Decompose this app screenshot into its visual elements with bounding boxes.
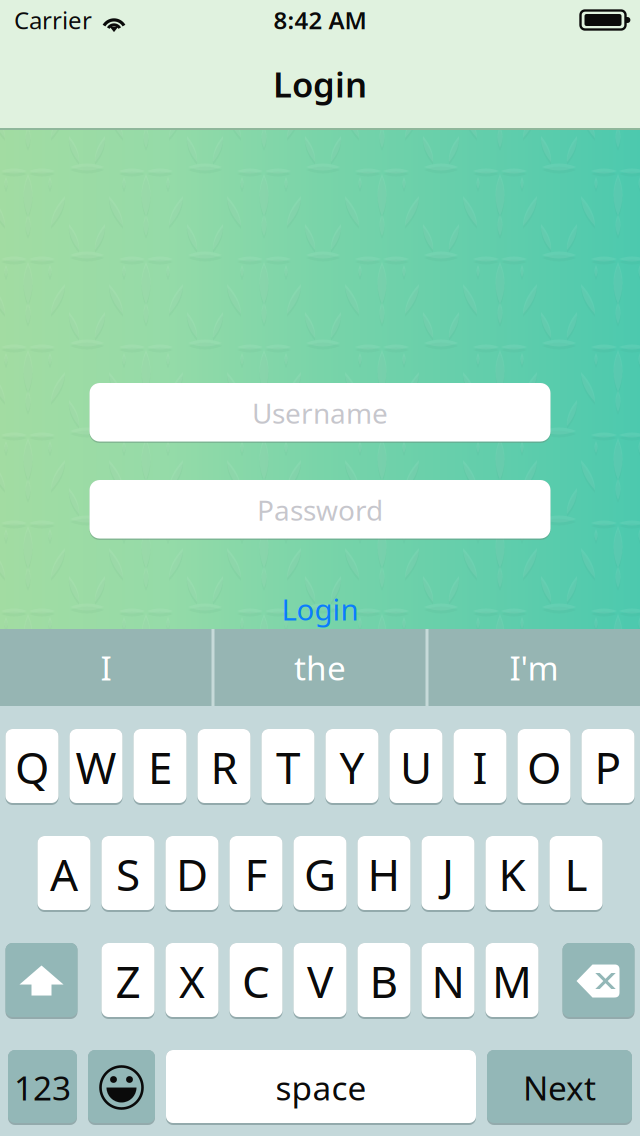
button[interactable]: Z [101, 943, 154, 1019]
staticText: space [275, 1065, 366, 1110]
button[interactable]: C [229, 943, 282, 1019]
staticText: V [307, 952, 333, 1010]
button[interactable]: the [214, 629, 425, 706]
staticText: I [472, 738, 487, 796]
button[interactable]: Password [89, 480, 550, 540]
staticText: 8:42 AM [273, 4, 366, 36]
button[interactable]: K [485, 836, 538, 912]
button[interactable]: B [357, 943, 410, 1019]
staticText: E [148, 738, 172, 796]
staticText: W [75, 738, 116, 796]
staticText: N [431, 952, 464, 1010]
button[interactable]: Y [325, 729, 378, 805]
button[interactable]: N [421, 943, 474, 1019]
staticText: the [294, 645, 346, 690]
staticText: K [498, 845, 525, 903]
staticText: T [276, 738, 300, 796]
button[interactable]: G [293, 836, 346, 912]
button[interactable]: R [197, 729, 250, 805]
staticText: G [304, 845, 336, 903]
button[interactable]: I [453, 729, 506, 805]
button[interactable]: Emoji [88, 1050, 155, 1125]
button[interactable]: T [261, 729, 314, 805]
button[interactable]: 123 [8, 1050, 77, 1125]
staticText: Password [257, 491, 383, 529]
staticText: Login [281, 589, 358, 628]
staticText: U [400, 738, 432, 796]
button[interactable]: Login [89, 589, 550, 629]
staticText: M [492, 952, 532, 1010]
button[interactable]: W [69, 729, 122, 805]
staticText: F [244, 845, 267, 903]
staticText: C [242, 952, 270, 1010]
staticText: D [176, 845, 208, 903]
button[interactable]: S [101, 836, 154, 912]
staticText: Next [523, 1065, 596, 1110]
staticText: Q [15, 738, 49, 796]
button[interactable]: Shift [5, 943, 77, 1019]
button[interactable]: D [165, 836, 218, 912]
staticText: L [564, 845, 587, 903]
staticText: A [50, 845, 78, 903]
staticText: O [527, 738, 561, 796]
button[interactable]: I [0, 629, 211, 706]
button[interactable]: F [229, 836, 282, 912]
button[interactable]: L [549, 836, 602, 912]
staticText: S [116, 845, 140, 903]
button[interactable]: O [517, 729, 570, 805]
staticText: I'm [509, 645, 558, 690]
button[interactable]: H [357, 836, 410, 912]
button[interactable]: Next [487, 1050, 632, 1125]
button[interactable]: E [133, 729, 186, 805]
button[interactable]: Q [5, 729, 58, 805]
staticText: Username [252, 394, 388, 432]
button[interactable]: P [581, 729, 634, 805]
staticText: I [100, 645, 111, 690]
staticText: H [367, 845, 400, 903]
staticText: 123 [14, 1065, 71, 1110]
staticText: B [369, 952, 398, 1010]
staticText: Z [115, 952, 140, 1010]
staticText: R [210, 738, 237, 796]
button[interactable]: I'm [428, 629, 639, 706]
button[interactable]: X [165, 943, 218, 1019]
staticText: Login [273, 61, 367, 107]
button[interactable]: J [421, 836, 474, 912]
staticText: Y [339, 738, 364, 796]
button[interactable]: A [37, 836, 90, 912]
staticText: Carrier [14, 4, 92, 36]
button[interactable]: Username [89, 383, 550, 443]
staticText: J [442, 845, 454, 903]
button[interactable]: space [166, 1050, 476, 1125]
button[interactable]: M [485, 943, 538, 1019]
staticText: P [594, 738, 621, 796]
staticText: X [179, 952, 205, 1010]
button[interactable]: U [389, 729, 442, 805]
button[interactable]: V [293, 943, 346, 1019]
button[interactable]: Delete [562, 943, 634, 1019]
